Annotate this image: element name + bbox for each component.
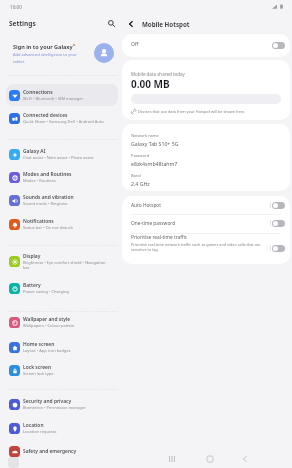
staticText: Galaxy AI: [23, 148, 46, 155]
staticText: Sign in to your Galaxy: [13, 43, 73, 50]
staticText: Screen lock type: [23, 371, 54, 376]
staticText: Lock screen: [23, 364, 52, 371]
staticText: Location requests: [23, 429, 57, 434]
staticText: Password: [131, 153, 150, 158]
staticText: Prioritise real-time traffic: [131, 234, 188, 241]
staticText: Security and privacy: [23, 398, 72, 405]
button[interactable]: Wallpaper and style: [6, 311, 118, 333]
button[interactable]: Toggle: [272, 202, 285, 209]
staticText: Battery: [23, 282, 41, 289]
button[interactable]: Search: [104, 16, 119, 31]
staticText: Wi-Fi • Bluetooth • SIM manager: [23, 96, 84, 101]
button[interactable]: Battery: [6, 277, 118, 299]
staticText: Wallpapers • Colour palette: [23, 323, 75, 328]
button[interactable]: Recents: [165, 452, 179, 466]
staticText: 10:00: [10, 4, 22, 10]
staticText: 2.4 GHz: [131, 180, 150, 187]
staticText: Sounds and vibration: [23, 194, 74, 201]
button[interactable]: Display: [6, 248, 118, 274]
button[interactable]: Galaxy AI: [6, 143, 118, 165]
button[interactable]: Security and privacy: [6, 393, 118, 415]
staticText: Mobile Hotspot: [142, 20, 190, 28]
button[interactable]: Sign in to your Galaxy: [4, 35, 118, 68]
staticText: Galaxy Tab S10+ 5G: [131, 140, 179, 147]
staticText: Connected devices: [23, 112, 68, 119]
button[interactable]: Toggle: [272, 42, 285, 49]
button[interactable]: Back: [123, 16, 139, 32]
staticText: Network name: [131, 133, 159, 138]
button[interactable]: Modes and Routines: [6, 166, 118, 188]
staticText: Modes • Routines: [23, 178, 56, 183]
staticText: Off: [131, 41, 139, 48]
staticText: Settings: [9, 19, 36, 28]
button[interactable]: Safety and emergency: [6, 440, 118, 462]
staticText: Brightness • Eye comfort shield • Naviga…: [23, 260, 107, 270]
staticText: Sound mode • Ringtone: [23, 201, 68, 206]
button[interactable]: Sounds and vibration: [6, 189, 118, 211]
button[interactable]: Back: [238, 452, 252, 466]
staticText: Band: [131, 173, 141, 178]
staticText: Auto Hotspot: [131, 202, 161, 209]
staticText: Display: [23, 253, 41, 260]
staticText: Quick Share • Samsung DeX • Android Auto: [23, 119, 104, 124]
staticText: Location: [23, 422, 44, 429]
staticText: Devices that use data from your Hotspot …: [138, 109, 246, 114]
staticText: Connections: [23, 89, 53, 96]
button[interactable]: Prioritise real-time traffic: [122, 233, 290, 264]
staticText: Chat assist • Note assist • Photo assist: [23, 155, 94, 160]
staticText: Power saving • Charging: [23, 289, 69, 294]
button[interactable]: One-time password: [122, 214, 290, 232]
button[interactable]: Connections: [6, 84, 118, 106]
staticText: Notifications: [23, 218, 54, 225]
staticText: One-time password: [131, 220, 176, 227]
staticText: e8zk4smb48tahm7: [131, 160, 178, 167]
staticText: Safety and emergency: [23, 448, 77, 455]
button[interactable]: Off: [122, 34, 290, 57]
button[interactable]: Connected devices: [6, 107, 118, 129]
staticText: Home screen: [23, 341, 55, 348]
button[interactable]: Toggle: [272, 245, 285, 252]
button[interactable]: Location: [6, 417, 118, 439]
staticText: Layout • App icon badges: [23, 348, 71, 353]
button[interactable]: Auto Hotspot: [122, 196, 290, 214]
button[interactable]: Home: [203, 452, 217, 466]
staticText: Wallpaper and style: [23, 316, 71, 323]
button[interactable]: Notifications: [6, 213, 118, 235]
staticText: Add advanced intelligence to your tablet…: [13, 52, 83, 64]
button[interactable]: Home screen: [6, 336, 118, 358]
staticText: Biometrics • Permission manager: [23, 405, 86, 410]
staticText: Prioritise real-time network traffic suc…: [131, 242, 271, 252]
staticText: 0.00 MB: [131, 77, 170, 91]
button[interactable]: Toggle: [272, 220, 285, 227]
button[interactable]: Lock screen: [6, 359, 118, 381]
staticText: Status bar • Do not disturb: [23, 225, 73, 230]
staticText: Modes and Routines: [23, 171, 72, 178]
staticText: Mobile data shared today: [131, 71, 185, 77]
